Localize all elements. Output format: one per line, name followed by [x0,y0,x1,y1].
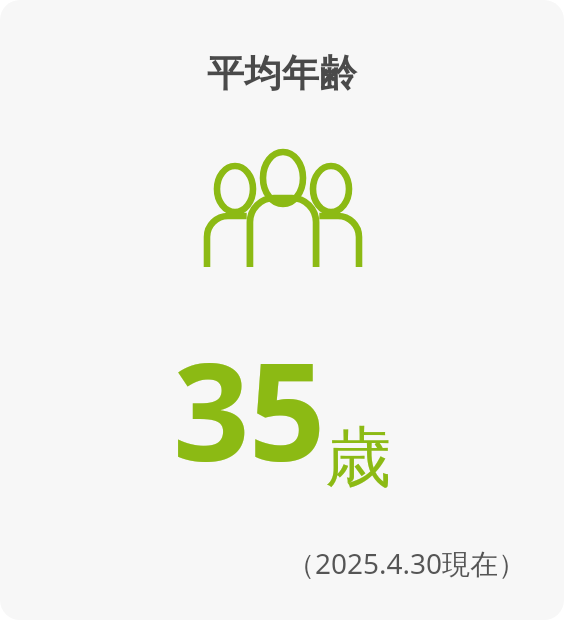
button[interactable]: 平均年齢 [0,0,564,620]
staticText: 平均年齢 [0,50,564,97]
staticText: 歳 [325,416,391,499]
other: People [202,150,364,270]
staticText: （2025.4.30現在） [286,544,526,582]
staticText: 35 [173,318,325,501]
